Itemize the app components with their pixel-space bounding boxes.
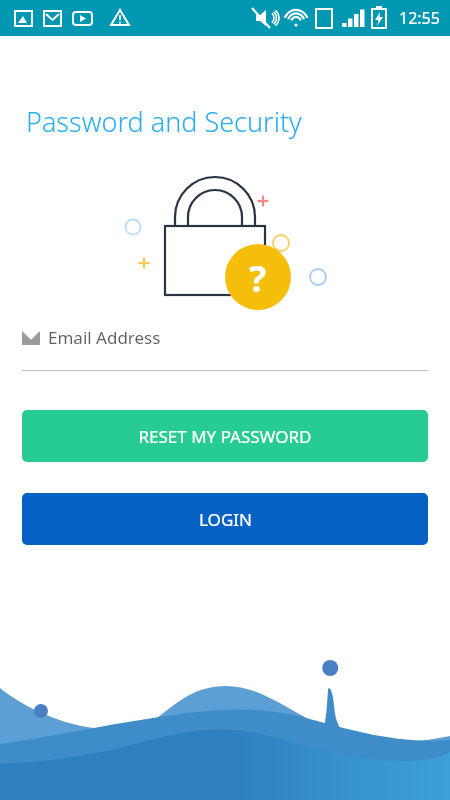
staticText: Password and Security (26, 103, 302, 140)
button[interactable]: RESET MY PASSWORD (22, 410, 428, 462)
staticText: LOGIN (199, 508, 252, 531)
staticText: Email Address (48, 326, 161, 349)
button[interactable]: LOGIN (22, 493, 428, 545)
button[interactable]: Email Address (22, 326, 428, 371)
other: Forgot password illustration (110, 155, 340, 315)
staticText: 12:55 (399, 7, 440, 29)
staticText: RESET MY PASSWORD (138, 425, 312, 448)
staticText: ? (249, 254, 267, 300)
